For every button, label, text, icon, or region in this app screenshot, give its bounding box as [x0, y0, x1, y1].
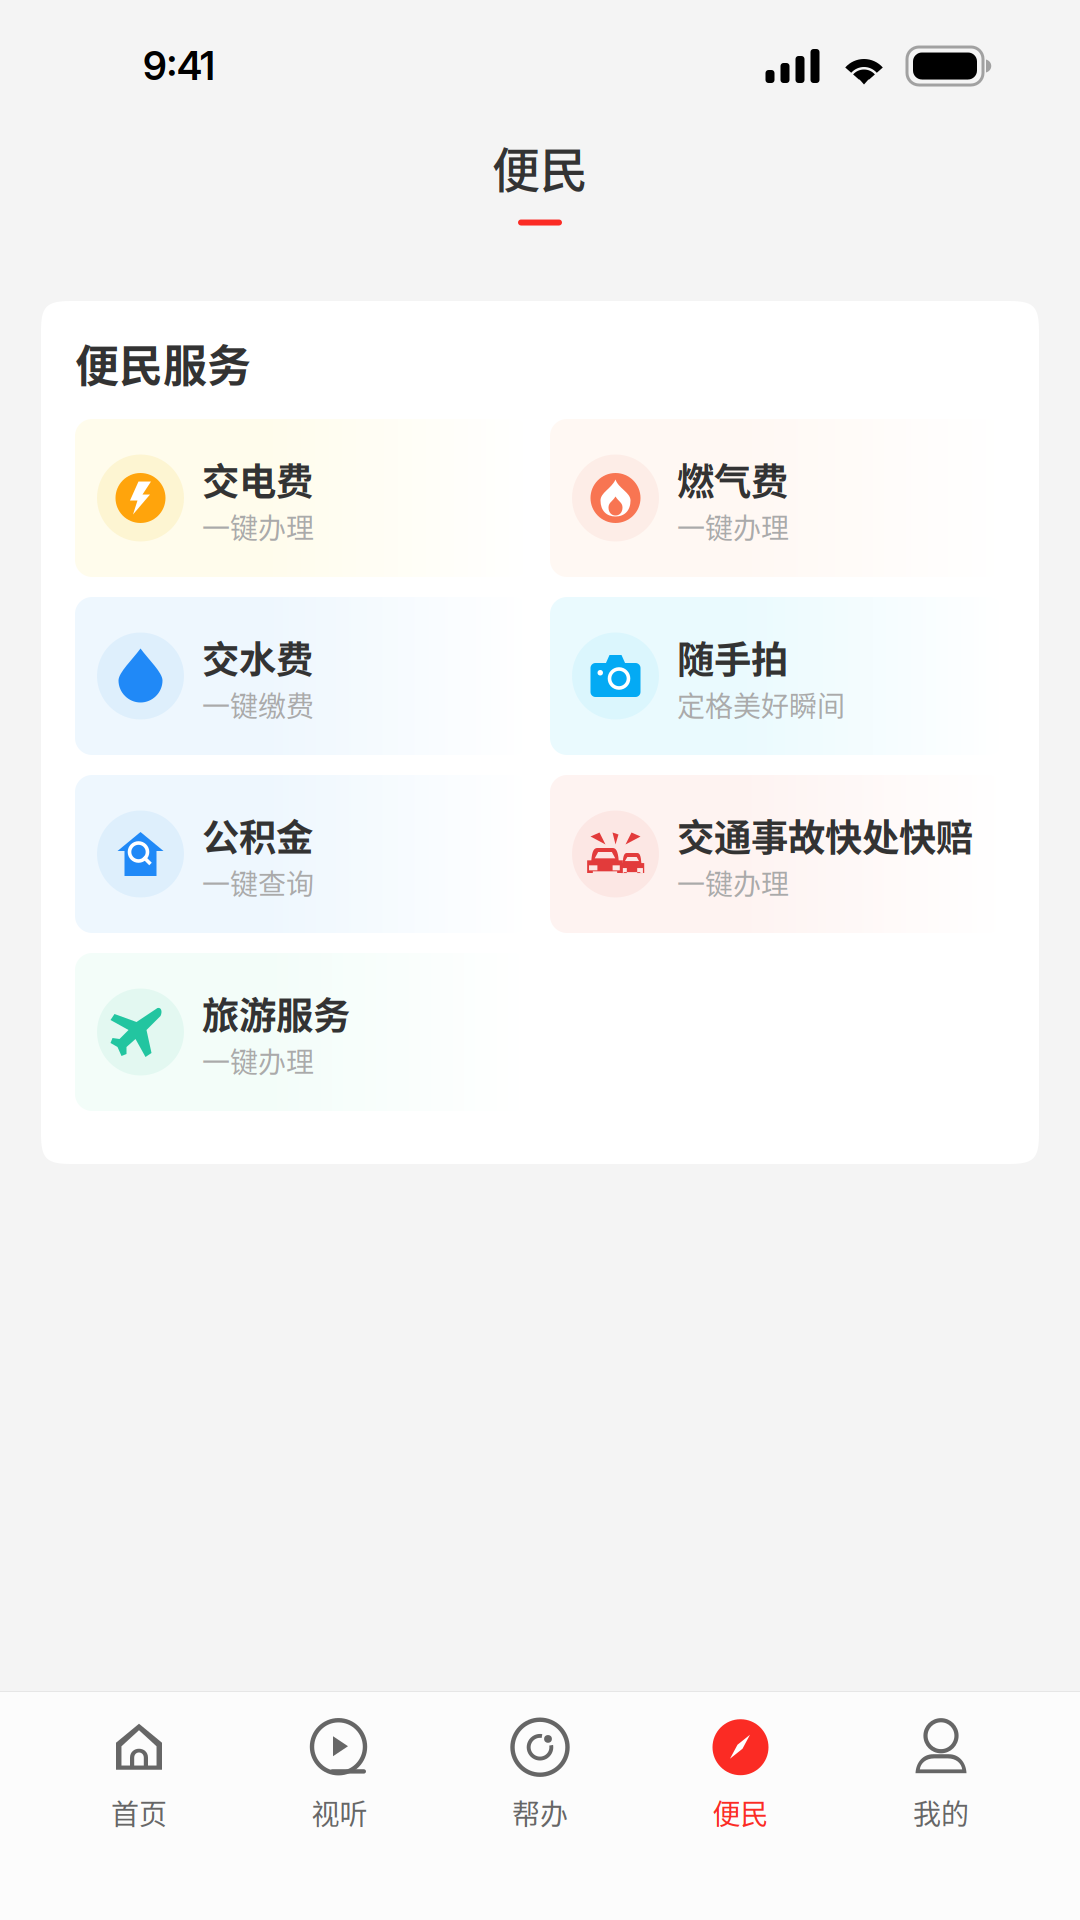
- staticText: 随手拍: [677, 630, 788, 684]
- button[interactable]: 燃气费: [550, 419, 1005, 577]
- staticText: 帮办: [512, 1792, 568, 1833]
- staticText: 便民: [712, 1792, 768, 1833]
- staticText: 一键办理: [677, 506, 789, 547]
- button[interactable]: 公积金: [75, 775, 530, 933]
- button[interactable]: 交通事故快处快赔: [550, 775, 1005, 933]
- staticText: 一键办理: [202, 1040, 314, 1081]
- staticText: 旅游服务: [202, 986, 350, 1040]
- staticText: 我的: [913, 1792, 969, 1833]
- staticText: 交水费: [202, 630, 313, 684]
- button[interactable]: 我的: [883, 1715, 999, 1837]
- staticText: 视听: [311, 1792, 367, 1833]
- button[interactable]: 交电费: [75, 419, 530, 577]
- staticText: 首页: [111, 1792, 167, 1833]
- staticText: 便民: [492, 132, 588, 201]
- button[interactable]: 便民: [682, 1715, 798, 1837]
- staticText: 便民服务: [75, 331, 251, 395]
- staticText: 交电费: [202, 452, 313, 506]
- button[interactable]: 帮办: [482, 1715, 598, 1837]
- staticText: 一键缴费: [202, 684, 314, 725]
- staticText: 9:41: [143, 43, 215, 89]
- staticText: 一键办理: [202, 506, 314, 547]
- staticText: 燃气费: [677, 452, 788, 506]
- staticText: 公积金: [202, 808, 313, 862]
- button[interactable]: 交水费: [75, 597, 530, 755]
- staticText: 交通事故快处快赔: [677, 808, 973, 862]
- button[interactable]: 首页: [81, 1715, 197, 1837]
- staticText: 一键办理: [677, 862, 789, 903]
- button[interactable]: 旅游服务: [75, 953, 530, 1111]
- staticText: 一键查询: [202, 862, 314, 903]
- button[interactable]: 随手拍: [550, 597, 1005, 755]
- staticText: 定格美好瞬间: [677, 684, 845, 725]
- button[interactable]: 视听: [281, 1715, 397, 1837]
